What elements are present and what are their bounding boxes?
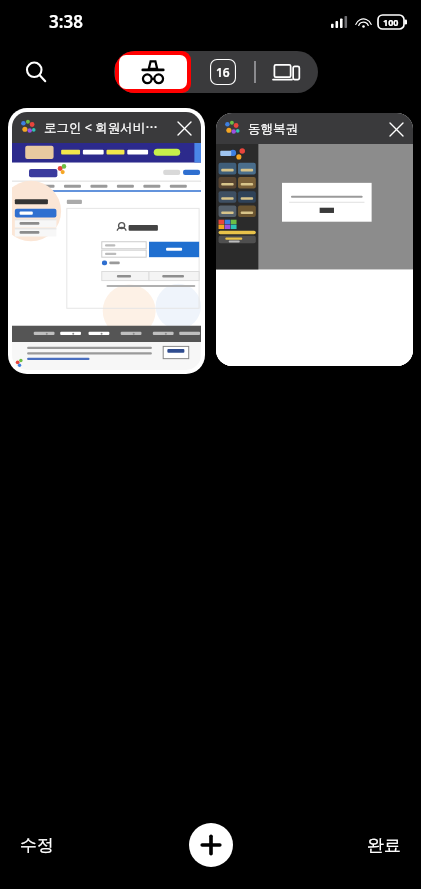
staticText: 동행복권 xyxy=(248,121,382,137)
button[interactable]: Tabs from other devices xyxy=(256,51,318,93)
button[interactable]: 완료 xyxy=(355,827,413,864)
button[interactable]: New incognito tab xyxy=(189,823,233,867)
staticText: 완료 xyxy=(367,835,401,856)
button[interactable]: 동행복권 xyxy=(216,113,413,366)
staticText: 수정 xyxy=(20,835,54,856)
button[interactable]: Search xyxy=(14,50,58,94)
staticText: 3:38 xyxy=(49,10,83,33)
button[interactable]: Close tab xyxy=(386,119,406,139)
button[interactable]: 16 tabs xyxy=(192,51,254,93)
button[interactable]: Close tab xyxy=(174,118,194,138)
staticText: 16 xyxy=(216,64,230,80)
button[interactable]: 수정 xyxy=(8,827,66,864)
button[interactable]: 로그인 < 회원서비스 |... xyxy=(12,112,201,370)
button[interactable]: Incognito tabs xyxy=(114,51,192,93)
staticText: 로그인 < 회원서비스 |... xyxy=(44,119,170,136)
staticText: 100 xyxy=(383,16,399,28)
